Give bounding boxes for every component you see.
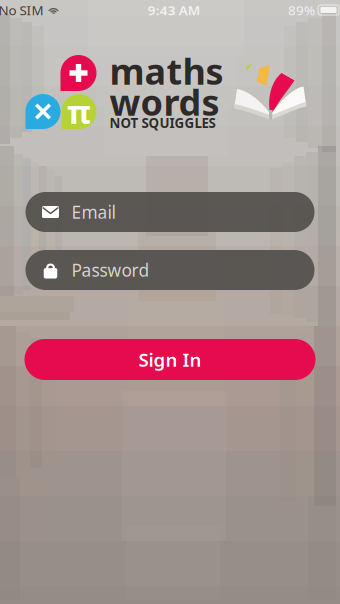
staticText: NOT SQUIGGLES — [109, 114, 215, 132]
button[interactable]: Password — [25, 250, 314, 290]
button[interactable]: Sign In — [24, 339, 315, 380]
staticText: 9:43 AM — [148, 1, 200, 19]
staticText: maths — [109, 47, 223, 95]
staticText: words — [109, 78, 219, 126]
staticText: Sign In — [138, 347, 201, 372]
staticText: Password — [71, 258, 149, 281]
staticText: 89% — [288, 1, 315, 19]
button[interactable]: Email — [25, 192, 314, 232]
staticText: No SIM — [0, 1, 43, 19]
staticText: Email — [71, 200, 115, 223]
staticText: π — [67, 90, 91, 133]
